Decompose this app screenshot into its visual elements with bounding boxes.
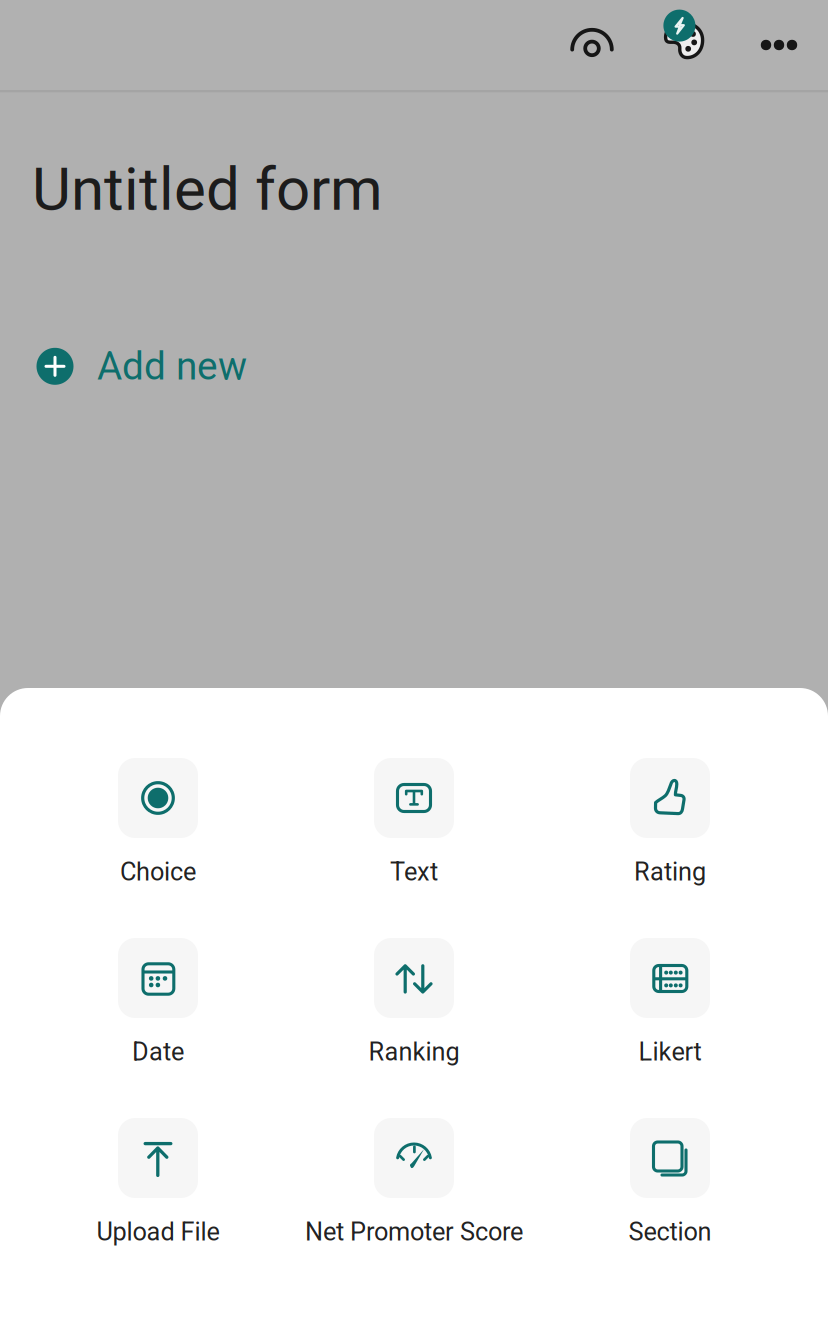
- staticText: Text: [390, 857, 438, 887]
- button[interactable]: Rating: [542, 758, 798, 883]
- staticText: Choice: [120, 857, 196, 887]
- staticText: Date: [132, 1037, 184, 1067]
- button[interactable]: Upload File: [30, 1118, 286, 1243]
- staticText: Untitled form: [32, 154, 383, 224]
- staticText: Add new: [97, 344, 247, 389]
- staticText: Rating: [634, 857, 706, 887]
- button[interactable]: Net Promoter Score: [286, 1118, 542, 1243]
- button[interactable]: Ranking: [286, 938, 542, 1063]
- button[interactable]: Text: [286, 758, 542, 883]
- staticText: Section: [628, 1217, 711, 1247]
- button[interactable]: Likert: [542, 938, 798, 1063]
- staticText: Ranking: [368, 1037, 459, 1067]
- staticText: Upload File: [96, 1217, 219, 1247]
- button[interactable]: More options: [731, 0, 827, 90]
- button[interactable]: Add new: [32, 340, 247, 392]
- button[interactable]: Choice: [30, 758, 286, 883]
- button[interactable]: Preview: [545, 0, 639, 90]
- button[interactable]: Style: [639, 0, 731, 90]
- button[interactable]: Section: [542, 1118, 798, 1243]
- button[interactable]: Date: [30, 938, 286, 1063]
- staticText: Net Promoter Score: [305, 1217, 523, 1247]
- staticText: Likert: [638, 1037, 701, 1067]
